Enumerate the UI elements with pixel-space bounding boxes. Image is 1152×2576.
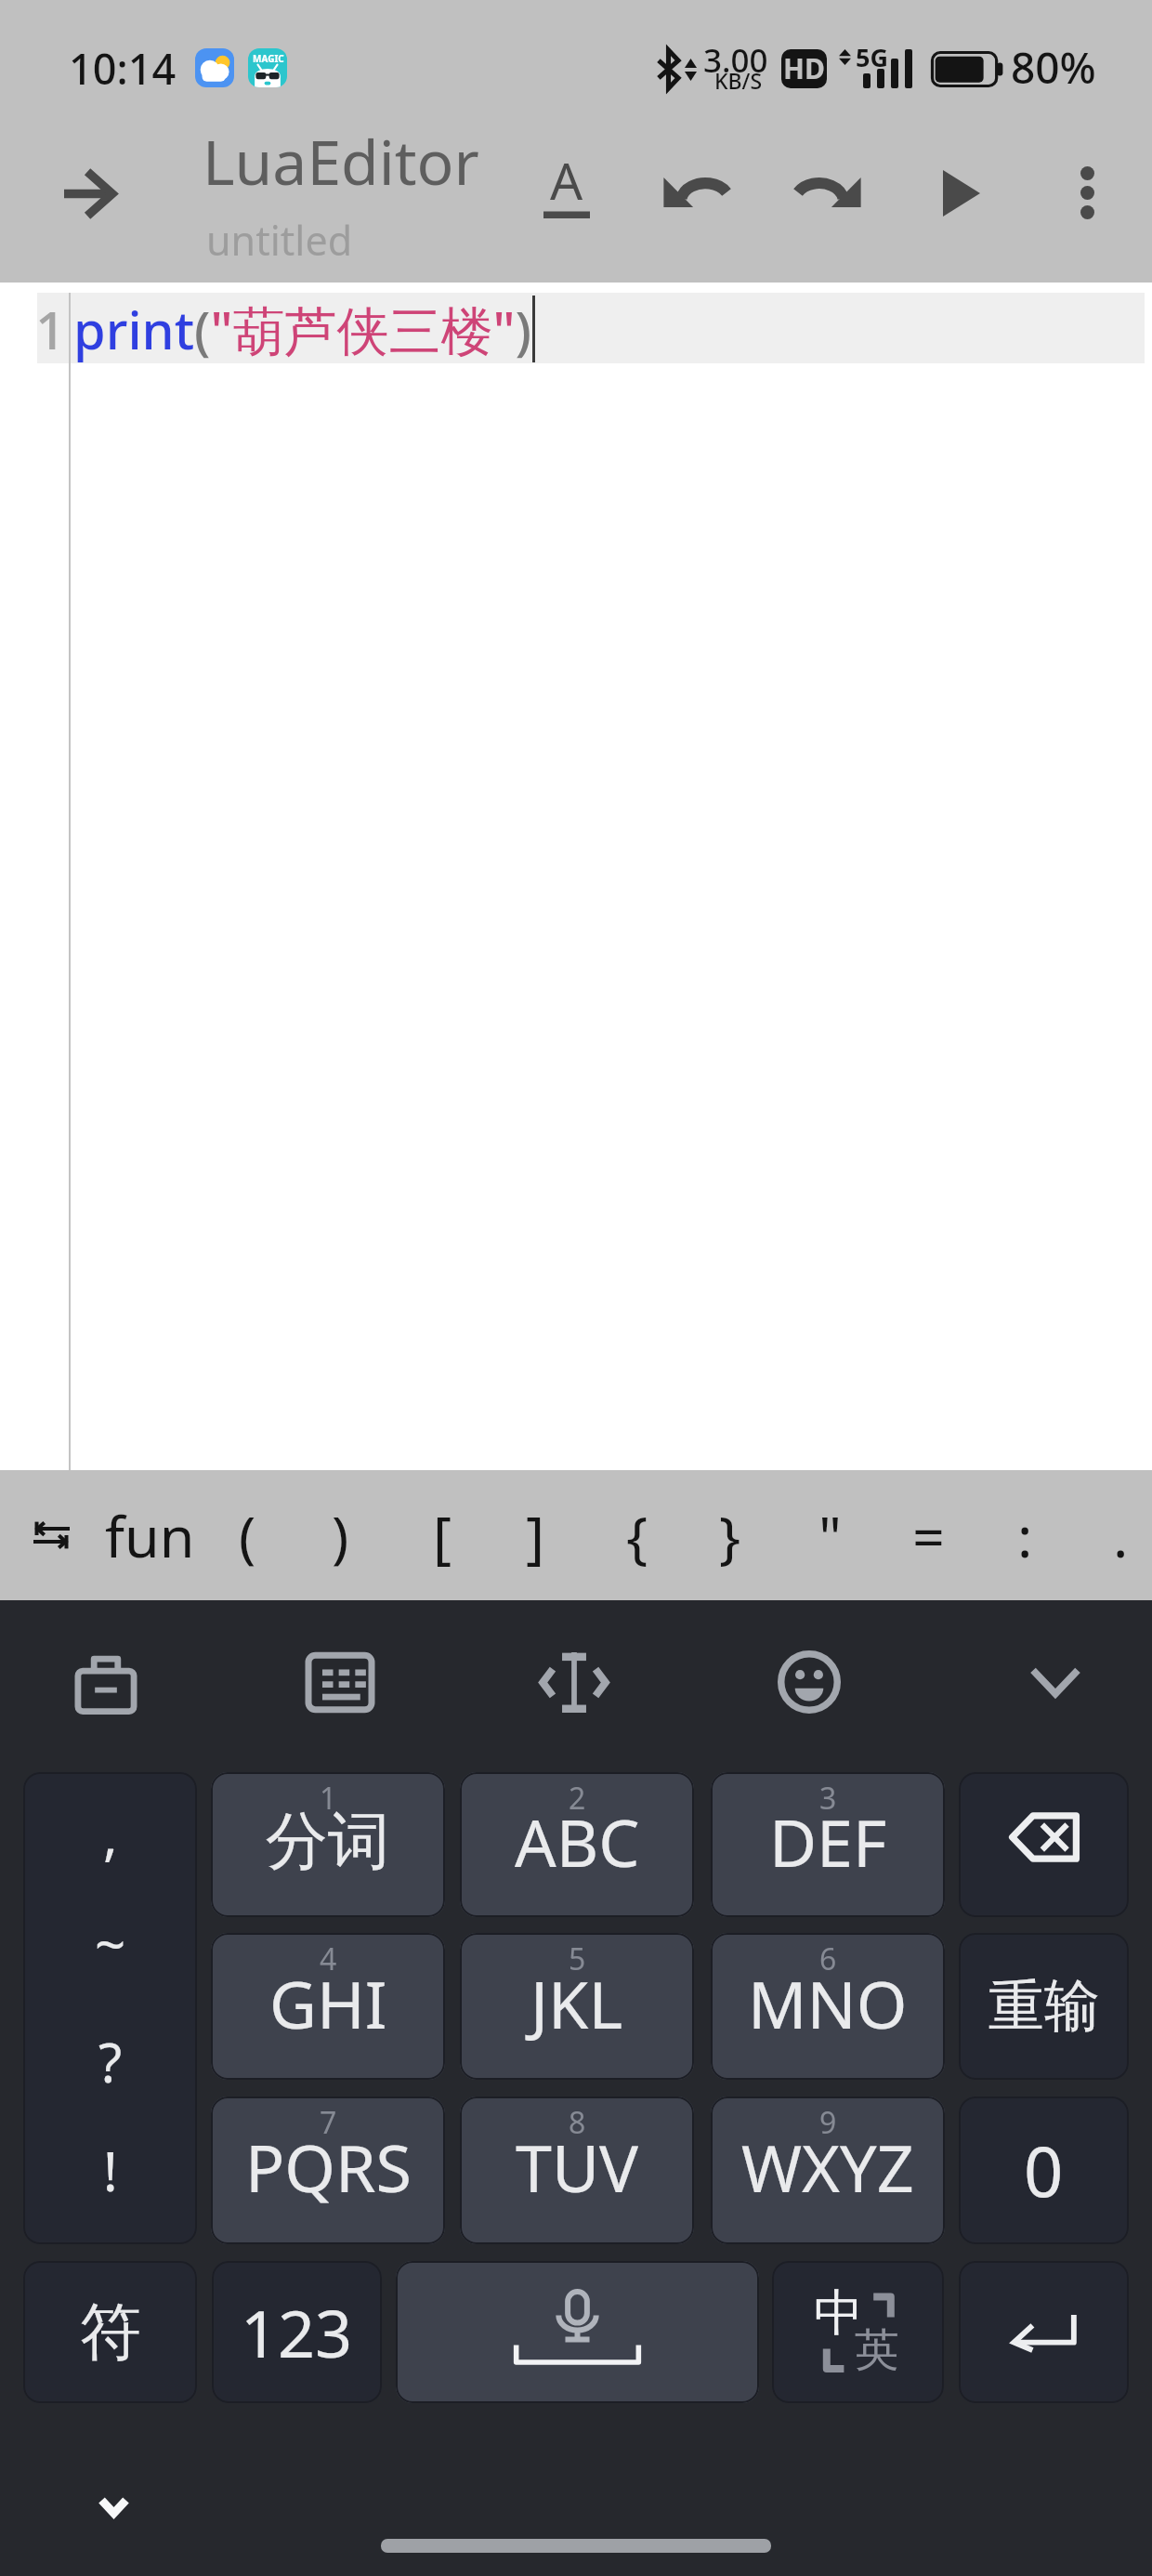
staticText: 符	[80, 2293, 141, 2371]
button[interactable]: More options	[1035, 140, 1139, 244]
staticText: TUV	[516, 2123, 639, 2211]
staticText: 1	[320, 1778, 337, 1819]
staticText: 3.00	[703, 38, 768, 83]
button[interactable]: Collapse	[981, 1608, 1130, 1756]
button[interactable]: fun	[103, 1470, 196, 1600]
button[interactable]: Hide keyboard	[75, 2468, 151, 2544]
button[interactable]: 3	[711, 1772, 945, 1917]
staticText: 80%	[1011, 38, 1096, 97]
staticText: 2	[569, 1778, 586, 1819]
button[interactable]: Undo	[645, 140, 749, 244]
staticText: ]	[526, 1497, 545, 1574]
staticText: 3	[819, 1778, 837, 1819]
button[interactable]: }	[684, 1470, 777, 1600]
button[interactable]	[959, 2261, 1129, 2403]
staticText: KB/S	[714, 66, 763, 95]
button[interactable]: [	[396, 1470, 489, 1600]
staticText: HD	[783, 49, 825, 87]
button[interactable]: "	[783, 1470, 876, 1600]
button[interactable]: Clipboard	[32, 1608, 180, 1756]
button[interactable]	[959, 1772, 1129, 1917]
staticText: 4	[320, 1939, 337, 1979]
button[interactable]: 5	[460, 1933, 694, 2080]
button[interactable]: 中	[772, 2261, 944, 2403]
staticText: LuaEditor	[203, 119, 479, 203]
staticText: =	[912, 1497, 945, 1574]
staticText: JKL	[530, 1959, 623, 2047]
staticText: ~	[95, 1907, 126, 1980]
staticText: 0	[1024, 2123, 1064, 2217]
staticText: A	[550, 145, 583, 215]
staticText: ?	[98, 2025, 123, 2098]
button[interactable]: =	[882, 1470, 975, 1600]
button[interactable]: 2	[460, 1772, 694, 1917]
staticText: [	[433, 1497, 452, 1574]
staticText: 重输	[988, 1971, 1100, 2042]
staticText: MNO	[748, 1959, 908, 2047]
staticText: .	[1113, 1497, 1129, 1574]
button[interactable]: )	[294, 1470, 386, 1600]
staticText: 英	[855, 2322, 899, 2378]
staticText: {	[626, 1497, 648, 1574]
button[interactable]: 6	[711, 1933, 945, 2080]
staticText: GHI	[269, 1959, 387, 2047]
button[interactable]: Cursor control	[500, 1608, 648, 1756]
staticText: :	[1017, 1497, 1033, 1574]
button[interactable]: Text style	[515, 138, 619, 242]
staticText: PQRS	[245, 2123, 412, 2211]
staticText: WXYZ	[741, 2123, 914, 2211]
button[interactable]: Tab	[13, 1470, 89, 1600]
button[interactable]: Keyboard layout	[266, 1608, 414, 1756]
button[interactable]: 符	[23, 2261, 197, 2403]
button[interactable]	[396, 2261, 759, 2403]
button[interactable]: {	[591, 1470, 684, 1600]
button[interactable]: 0	[959, 2096, 1129, 2244]
button[interactable]: 123	[212, 2261, 382, 2403]
staticText: 10:14	[69, 40, 177, 97]
button[interactable]: 7	[211, 2096, 445, 2244]
staticText: ABC	[515, 1797, 640, 1886]
staticText: ,	[103, 1797, 118, 1871]
staticText: 8	[569, 2102, 586, 2143]
staticText: 5	[569, 1939, 586, 1979]
button[interactable]: Emoji	[735, 1608, 884, 1756]
staticText: print("葫芦侠三楼")	[73, 294, 532, 364]
button[interactable]: .	[1074, 1470, 1152, 1600]
button[interactable]: 9	[711, 2096, 945, 2244]
staticText: fun	[105, 1497, 195, 1574]
staticText: 中	[814, 2282, 863, 2345]
button[interactable]: Redo	[775, 140, 879, 244]
staticText: MAGIC	[253, 52, 284, 65]
staticText: 1	[35, 293, 66, 365]
button[interactable]: ]	[489, 1470, 582, 1600]
button[interactable]: Navigate	[53, 156, 127, 230]
button[interactable]: ,	[23, 1772, 197, 2244]
button[interactable]: Run	[910, 141, 1014, 245]
staticText: "	[818, 1497, 842, 1574]
button[interactable]: (	[201, 1470, 294, 1600]
staticText: 9	[819, 2102, 837, 2143]
staticText: untitled	[206, 213, 353, 268]
staticText: 5G	[856, 40, 888, 74]
staticText: )	[332, 1497, 349, 1574]
button[interactable]: 8	[460, 2096, 694, 2244]
staticText: }	[719, 1497, 741, 1574]
button[interactable]: 重输	[959, 1933, 1129, 2080]
staticText: DEF	[769, 1797, 887, 1886]
staticText: 123	[241, 2288, 353, 2376]
staticText: 6	[819, 1939, 837, 1979]
staticText: !	[103, 2134, 118, 2207]
button[interactable]: 4	[211, 1933, 445, 2080]
staticText: (	[239, 1497, 256, 1574]
button[interactable]: :	[978, 1470, 1071, 1600]
button[interactable]: 1	[211, 1772, 445, 1917]
staticText: 分词	[266, 1802, 390, 1880]
staticText: 7	[320, 2102, 337, 2143]
